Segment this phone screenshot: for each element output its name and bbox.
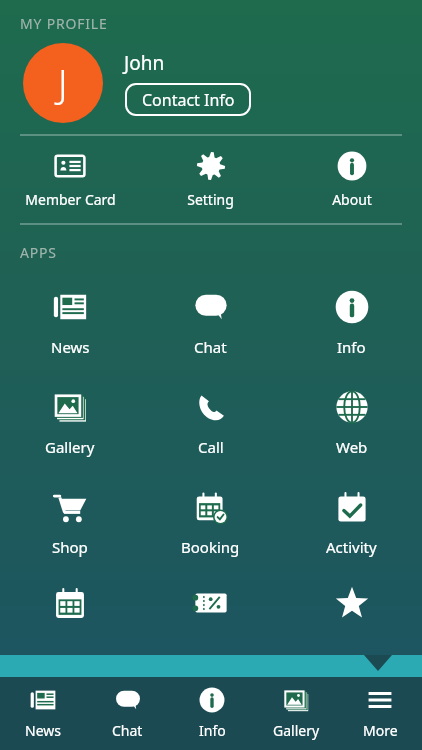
button[interactable]: App: [140, 576, 281, 636]
staticText: More: [363, 721, 398, 740]
staticText: Activity: [326, 537, 377, 557]
button[interactable]: J: [23, 43, 103, 123]
button[interactable]: App: [281, 576, 422, 636]
staticText: Gallery: [45, 437, 95, 457]
staticText: Call: [198, 437, 224, 457]
button[interactable]: Chat: [85, 677, 170, 750]
staticText: News: [25, 721, 61, 740]
button[interactable]: App: [0, 576, 140, 636]
button[interactable]: Info: [281, 276, 422, 376]
button[interactable]: Web: [281, 376, 422, 476]
staticText: Info: [199, 721, 226, 740]
staticText: News: [51, 337, 90, 357]
staticText: Chat: [194, 337, 227, 357]
button[interactable]: Activity: [281, 476, 422, 576]
staticText: J: [58, 57, 68, 109]
staticText: MY PROFILE: [20, 14, 108, 33]
staticText: About: [332, 190, 372, 209]
button[interactable]: News: [0, 276, 140, 376]
button[interactable]: Info: [170, 677, 254, 750]
button[interactable]: Call: [140, 376, 281, 476]
staticText: Booking: [181, 537, 240, 557]
staticText: Chat: [112, 721, 143, 740]
button[interactable]: Gallery: [0, 376, 140, 476]
button[interactable]: Chat: [140, 276, 281, 376]
button[interactable]: More: [338, 677, 422, 750]
staticText: Web: [336, 437, 368, 457]
button[interactable]: Gallery: [254, 677, 338, 750]
staticText: Gallery: [273, 721, 320, 740]
staticText: Setting: [187, 190, 234, 209]
button[interactable]: Member Card: [0, 143, 140, 217]
staticText: Member Card: [25, 190, 116, 209]
button[interactable]: Booking: [140, 476, 281, 576]
button[interactable]: Shop: [0, 476, 140, 576]
button[interactable]: Setting: [140, 143, 281, 217]
button[interactable]: News: [0, 677, 85, 750]
staticText: Shop: [52, 537, 88, 557]
staticText: John: [124, 50, 165, 76]
staticText: APPS: [20, 243, 57, 262]
button[interactable]: Contact Info: [124, 82, 252, 117]
staticText: Info: [337, 337, 366, 357]
staticText: Contact Info: [142, 89, 235, 111]
button[interactable]: About: [281, 143, 422, 217]
